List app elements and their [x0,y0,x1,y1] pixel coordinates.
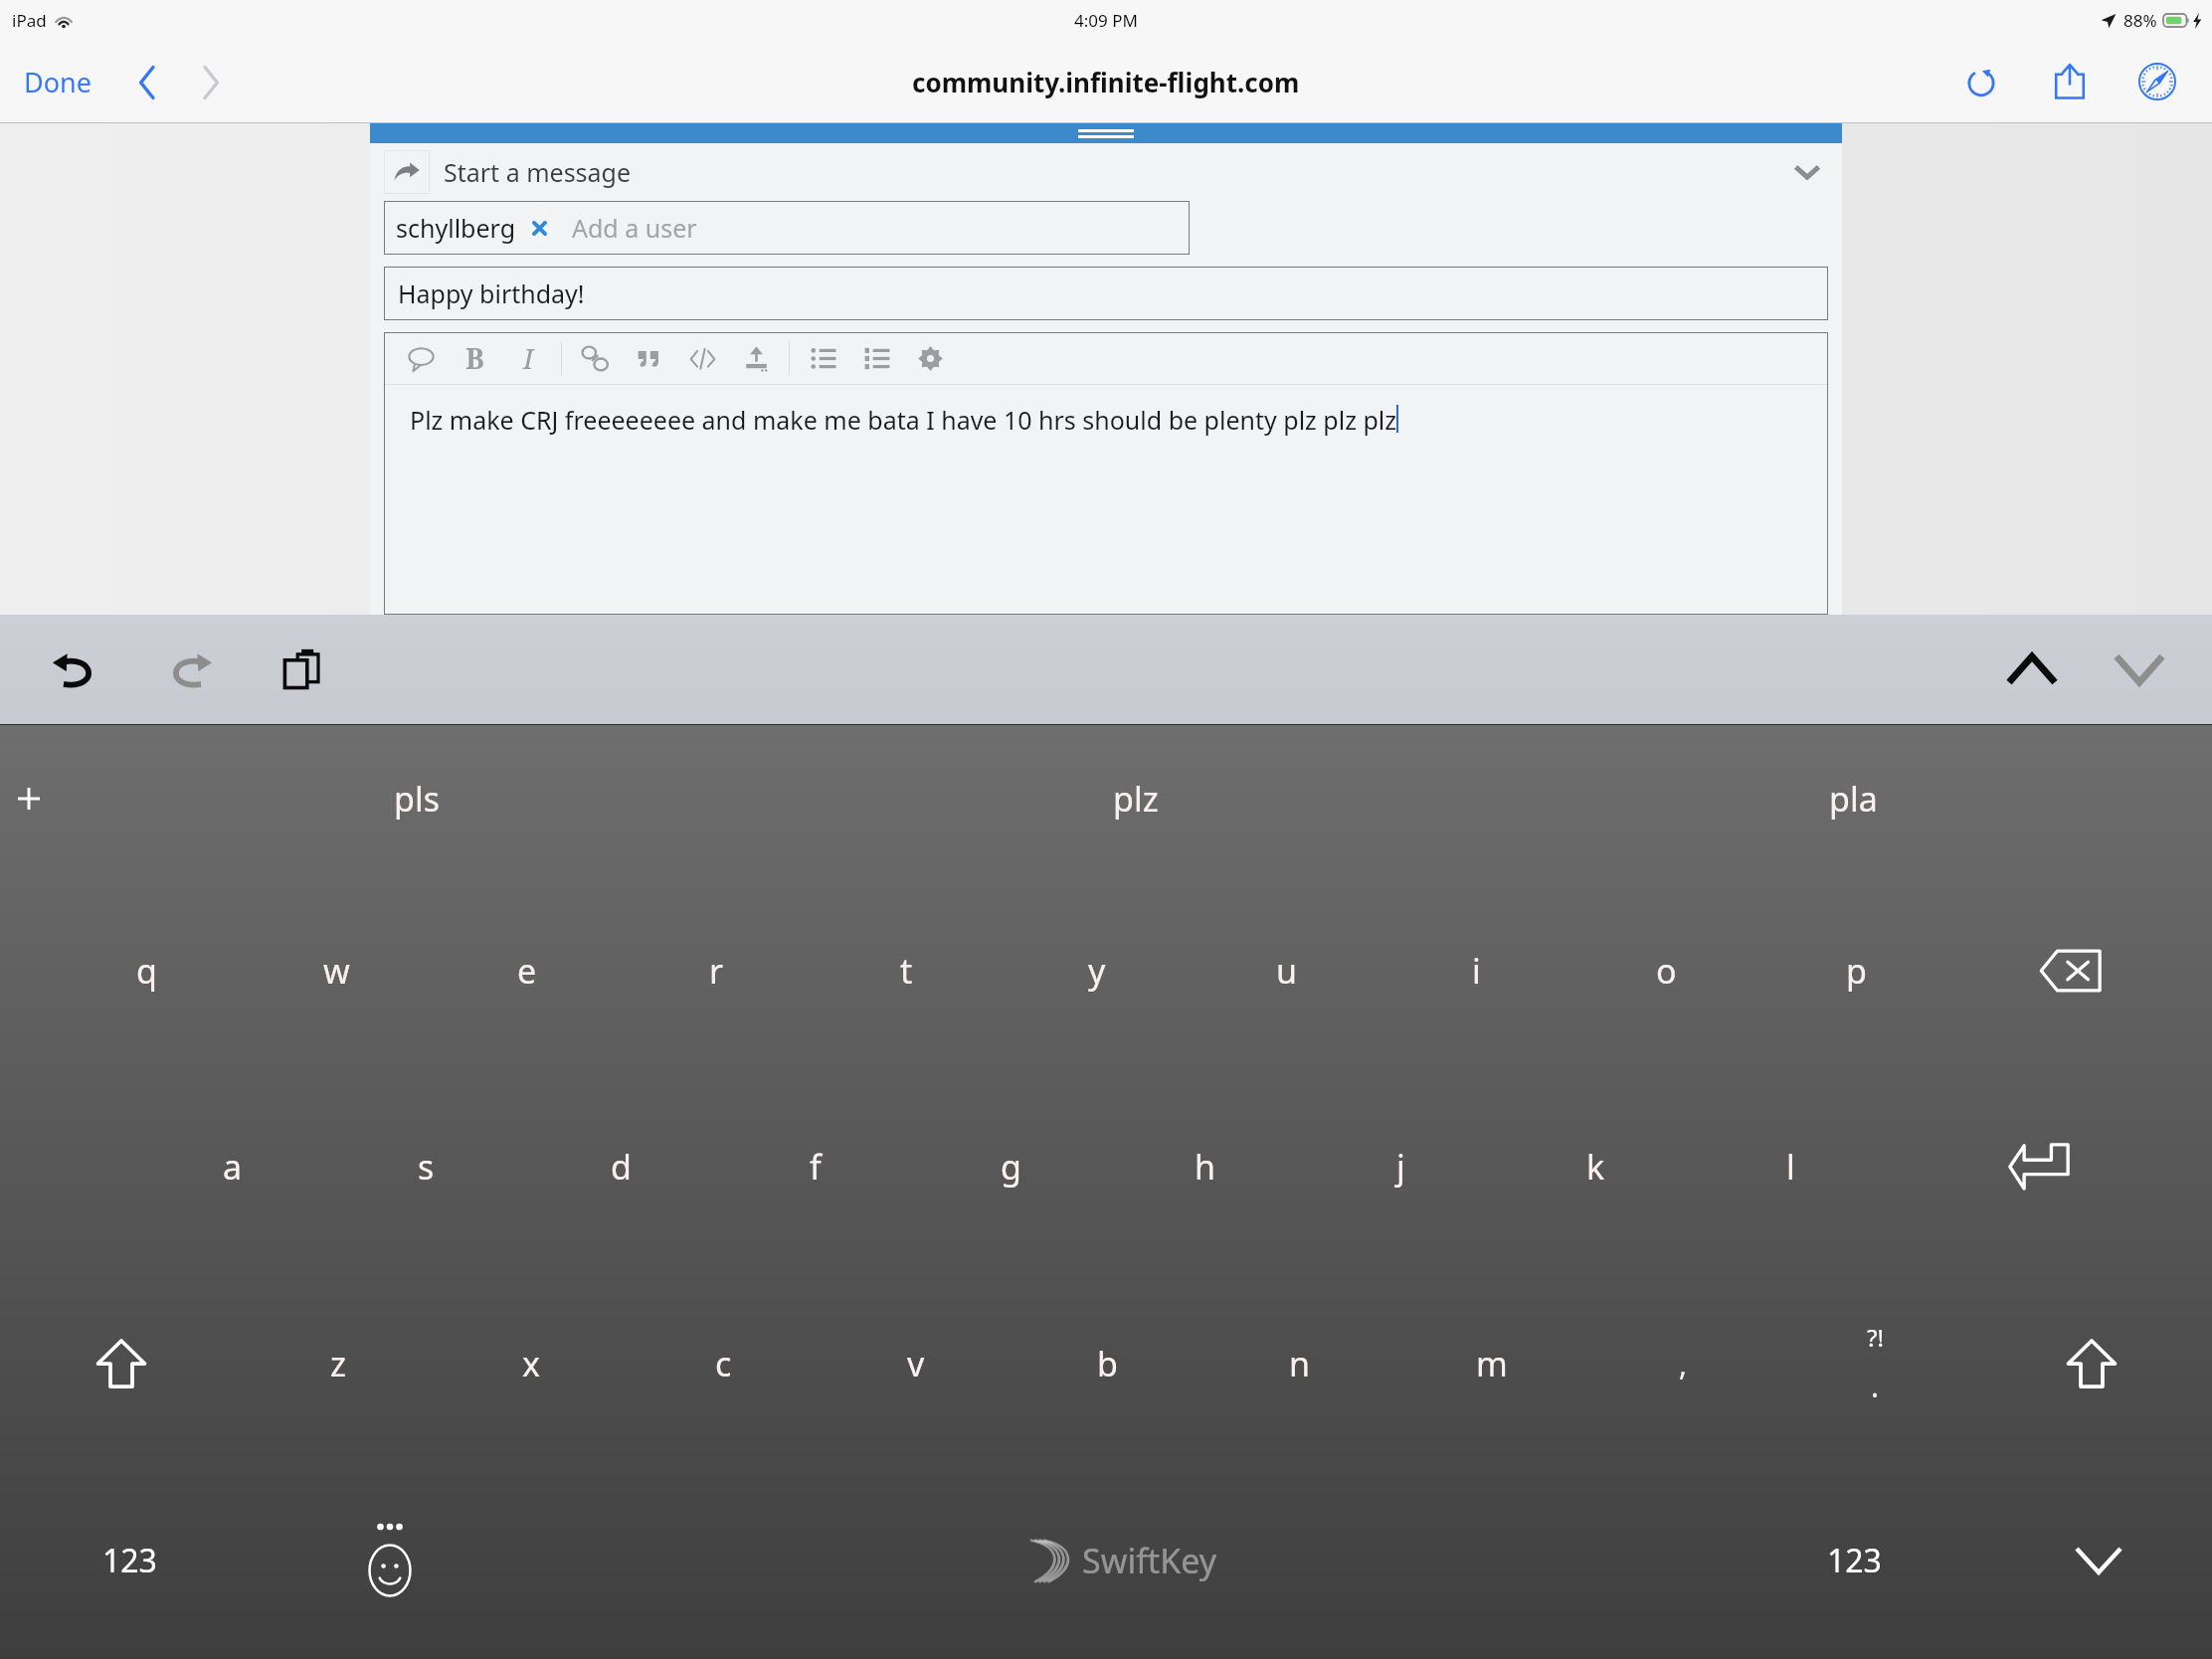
button[interactable]: Insert link [576,339,614,377]
button[interactable]: w [242,872,432,1068]
button[interactable]: i [1382,872,1571,1068]
staticText: y [1088,948,1106,994]
staticText: n [1289,1341,1311,1386]
button[interactable]: I [509,339,547,377]
button[interactable]: v [820,1265,1012,1462]
button[interactable]: Redo [153,639,227,700]
staticText: Happy birthday! [398,276,585,310]
button[interactable]: Backspace [1951,872,2189,1068]
button[interactable]: Reply [384,150,430,194]
button[interactable]: e [432,872,622,1068]
button[interactable]: Code [683,339,721,377]
button[interactable]: t [812,872,1002,1068]
staticText: I [523,339,534,377]
staticText: Done [24,64,92,100]
staticText: h [1195,1144,1216,1190]
button[interactable]: Forward [179,55,243,110]
button[interactable]: Space [520,1462,1724,1659]
button[interactable]: B [456,339,493,377]
staticText: z [330,1341,346,1386]
staticText: r [709,948,724,994]
button[interactable]: Emoji [260,1462,520,1659]
button[interactable]: o [1571,872,1761,1068]
button[interactable]: Bulleted list [804,339,841,377]
button[interactable]: More predictions [0,725,58,872]
button[interactable]: Open in Safari [2128,53,2186,110]
staticText: p [1846,948,1867,994]
button[interactable]: b [1012,1265,1203,1462]
button[interactable]: 123 [0,1462,260,1659]
button[interactable]: l [1693,1068,1888,1265]
button[interactable]: Return [1888,1068,2189,1265]
staticText: g [1001,1144,1021,1190]
button[interactable]: Shift [1971,1265,2212,1462]
button[interactable]: g [913,1068,1108,1265]
button[interactable]: 123 [1724,1462,1984,1659]
button[interactable]: Remove schyllberg [524,213,554,243]
button[interactable]: plz [777,725,1494,872]
staticText: l [1786,1144,1795,1190]
button[interactable]: y [1002,872,1192,1068]
button[interactable]: j [1303,1068,1498,1265]
button[interactable]: Clipboard [269,635,336,704]
staticText: , [1679,1344,1688,1384]
staticText: e [517,948,537,994]
button[interactable]: Blockquote [630,339,667,377]
staticText: i [1472,948,1481,994]
staticText: m [1476,1341,1508,1386]
button[interactable]: , [1587,1265,1779,1462]
button[interactable]: Back [115,55,179,110]
button[interactable]: Options [911,339,949,377]
staticText: 123 [102,1539,157,1582]
staticText: x [522,1341,540,1386]
staticText: Start a message [444,155,632,189]
staticText: a [223,1144,243,1190]
button[interactable]: n [1203,1265,1395,1462]
button[interactable]: pla [1495,725,2212,872]
button[interactable]: Quote bubble [402,339,440,377]
button[interactable]: Previous field [1995,643,2069,696]
staticText: pls [394,776,440,822]
staticText: plz [1113,776,1159,822]
button[interactable]: Next field [2103,643,2176,696]
button[interactable]: q [52,872,242,1068]
button[interactable]: c [628,1265,820,1462]
button[interactable]: Happy birthday! [384,267,1828,320]
staticText: d [611,1144,632,1190]
staticText: v [907,1341,925,1386]
staticText: Add a user [572,211,697,245]
staticText: B [465,339,484,377]
button[interactable]: p [1761,872,1951,1068]
button[interactable]: Hide keyboard [1984,1462,2212,1659]
button[interactable]: Shift [0,1265,242,1462]
button[interactable]: Done [0,50,115,114]
button[interactable]: k [1498,1068,1693,1265]
staticText: pla [1829,776,1878,822]
button[interactable]: s [329,1068,523,1265]
button[interactable]: r [622,872,812,1068]
staticText: f [810,1144,822,1190]
staticText: c [715,1341,732,1386]
button[interactable]: pls [58,725,776,872]
button[interactable]: m [1395,1265,1587,1462]
staticText: ?! [1867,1321,1884,1354]
button[interactable]: ?! [1779,1265,1971,1462]
button[interactable]: a [135,1068,329,1265]
staticText: j [1396,1144,1405,1190]
button[interactable]: schyllberg [384,201,1190,255]
button[interactable]: u [1192,872,1382,1068]
button[interactable]: Share [2037,54,2103,109]
button[interactable]: x [435,1265,628,1462]
button[interactable]: h [1108,1068,1303,1265]
button[interactable]: z [242,1265,435,1462]
button[interactable]: Undo [38,639,111,700]
button[interactable]: Collapse [1786,156,1828,188]
staticText: SwiftKey [1082,1538,1217,1583]
button[interactable]: Drag composer [370,123,1842,143]
button[interactable]: Upload [737,339,775,377]
button[interactable]: Reload [1947,56,2015,107]
staticText: Plz make CRJ freeeeeeee and make me bata… [410,403,1396,437]
button[interactable]: Numbered list [857,339,895,377]
button[interactable]: d [523,1068,718,1265]
button[interactable]: f [718,1068,913,1265]
